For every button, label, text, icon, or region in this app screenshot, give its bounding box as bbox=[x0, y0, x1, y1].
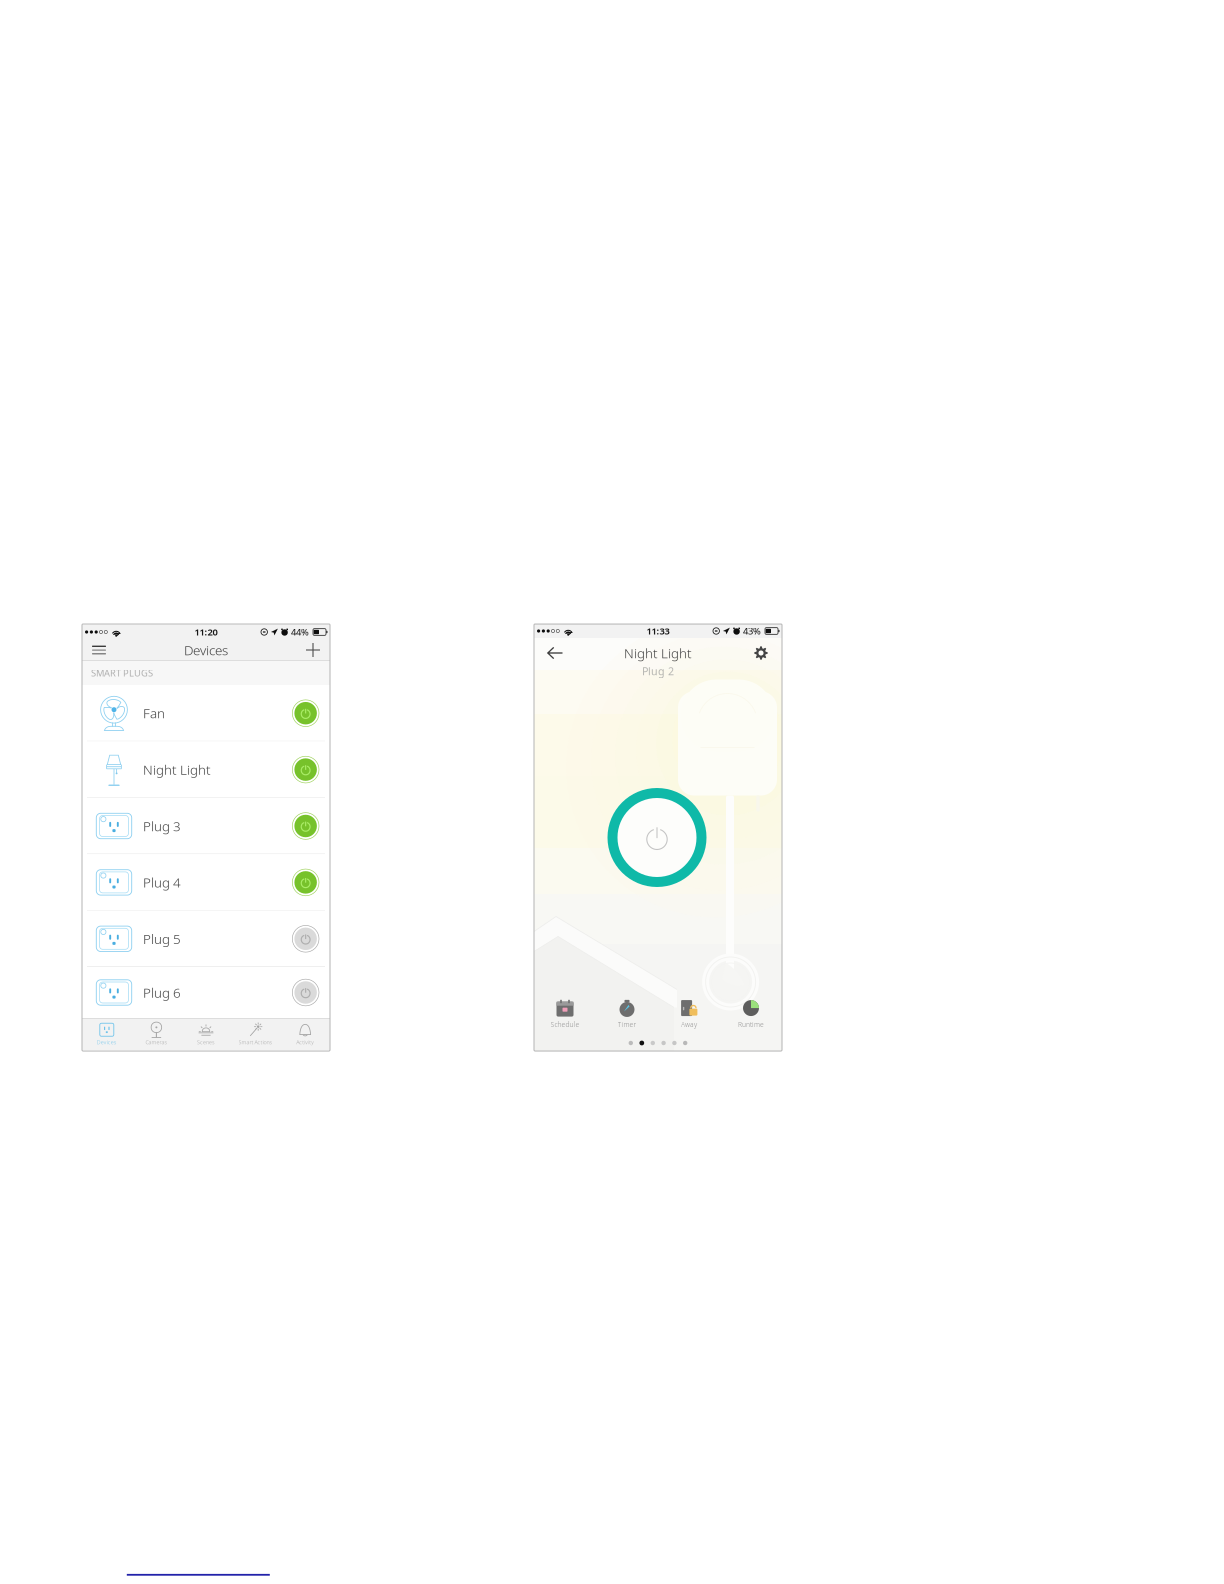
button[interactable]: Power bbox=[605, 785, 709, 889]
button[interactable]: Add device bbox=[300, 640, 326, 660]
staticText: Fan bbox=[143, 704, 165, 722]
staticText: Runtime bbox=[738, 1020, 764, 1029]
staticText: Devices bbox=[97, 1039, 117, 1046]
button[interactable]: Turn on bbox=[291, 924, 320, 954]
button[interactable]: Plug 5 bbox=[82, 911, 330, 967]
button[interactable]: Plug 6 bbox=[82, 967, 330, 1018]
button[interactable]: Plug 4 bbox=[82, 854, 330, 911]
staticText: Plug 2 bbox=[642, 664, 674, 678]
staticText: Devices bbox=[184, 641, 228, 659]
staticText: Plug 4 bbox=[143, 873, 181, 891]
staticText: Smart Actions bbox=[239, 1039, 273, 1046]
button[interactable]: Settings bbox=[746, 640, 776, 666]
staticText: 44% bbox=[291, 626, 309, 638]
button[interactable]: Turn off bbox=[291, 811, 320, 841]
button[interactable]: Runtime bbox=[720, 994, 782, 1034]
staticText: Plug 5 bbox=[143, 930, 181, 948]
button[interactable]: Activity bbox=[280, 1018, 330, 1050]
button[interactable]: Menu bbox=[86, 640, 112, 660]
staticText: Scenes bbox=[197, 1039, 215, 1046]
staticText: Cameras bbox=[145, 1039, 167, 1046]
button[interactable]: Plug 3 bbox=[82, 798, 330, 854]
button[interactable]: Schedule bbox=[534, 994, 596, 1034]
staticText: SMART PLUGS bbox=[91, 667, 153, 679]
button[interactable]: Turn off bbox=[291, 868, 320, 897]
staticText: Plug 6 bbox=[143, 984, 181, 1001]
staticText: 11:33 bbox=[646, 625, 669, 637]
staticText: Plug 3 bbox=[143, 817, 181, 835]
button[interactable]: Scenes bbox=[181, 1018, 231, 1050]
button[interactable]: Away bbox=[658, 994, 720, 1034]
staticText: 43% bbox=[743, 625, 761, 637]
button[interactable]: Night Light bbox=[82, 741, 330, 798]
button[interactable]: Timer bbox=[596, 994, 658, 1034]
staticText: Activity bbox=[296, 1039, 314, 1046]
button[interactable]: Fan bbox=[82, 685, 330, 741]
staticText: Schedule bbox=[550, 1020, 579, 1029]
button[interactable]: Back bbox=[540, 640, 570, 666]
staticText: 11:20 bbox=[194, 626, 217, 638]
button[interactable]: Smart Actions bbox=[231, 1018, 280, 1050]
button[interactable]: Turn off bbox=[291, 698, 320, 728]
button[interactable]: Cameras bbox=[132, 1018, 181, 1050]
button[interactable]: Turn on bbox=[291, 978, 320, 1007]
staticText: Night Light bbox=[143, 761, 211, 778]
button[interactable]: Turn off bbox=[291, 755, 320, 784]
staticText: Timer bbox=[617, 1020, 636, 1029]
staticText: Night Light bbox=[624, 644, 692, 662]
button[interactable]: Devices bbox=[82, 1018, 132, 1050]
staticText: Away bbox=[681, 1020, 697, 1029]
